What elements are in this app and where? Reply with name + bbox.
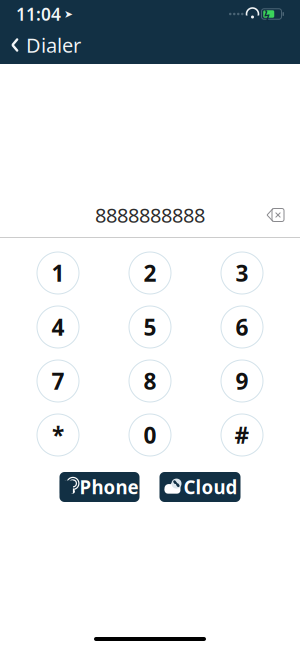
staticText: 0 (143, 420, 156, 450)
staticText: Dialer (26, 32, 81, 58)
staticText (259, 9, 261, 19)
staticText: 1 (51, 258, 64, 288)
button[interactable]: * (37, 414, 79, 456)
button[interactable]: 7 (37, 360, 79, 402)
staticText: # (234, 420, 249, 450)
staticText: 4 (51, 312, 64, 342)
staticText: 6 (235, 312, 248, 342)
button[interactable]: 0 (129, 414, 171, 456)
staticText: 3 (235, 258, 248, 288)
staticText: 11:04 (16, 2, 61, 25)
button[interactable]: 9 (221, 360, 263, 402)
staticText: 5 (143, 312, 156, 342)
staticText: * (52, 420, 64, 450)
staticText: Cloud (183, 475, 237, 499)
staticText: Phone (79, 475, 138, 499)
button[interactable]: 1 (37, 252, 79, 294)
button[interactable]: # (221, 414, 263, 456)
button[interactable]: 8 (129, 360, 171, 402)
staticText: 2 (143, 258, 156, 288)
staticText: ϟ (264, 7, 270, 21)
button[interactable]: 2 (129, 252, 171, 294)
button[interactable]: 📞 (59, 472, 139, 502)
staticText: ➤ (64, 8, 73, 20)
staticText: 7 (51, 366, 64, 396)
staticText: 8 (143, 366, 156, 396)
staticText: 8888888888 (95, 202, 205, 228)
button[interactable]: 5 (129, 306, 171, 348)
button[interactable]: 6 (221, 306, 263, 348)
staticText: 9 (235, 366, 248, 396)
button[interactable]: 3 (221, 252, 263, 294)
button[interactable]: Delete (258, 200, 292, 230)
staticText (243, 9, 245, 19)
button[interactable]: Cloud (159, 472, 240, 502)
button[interactable]: 4 (37, 306, 79, 348)
button[interactable]: Dialer (0, 28, 93, 62)
